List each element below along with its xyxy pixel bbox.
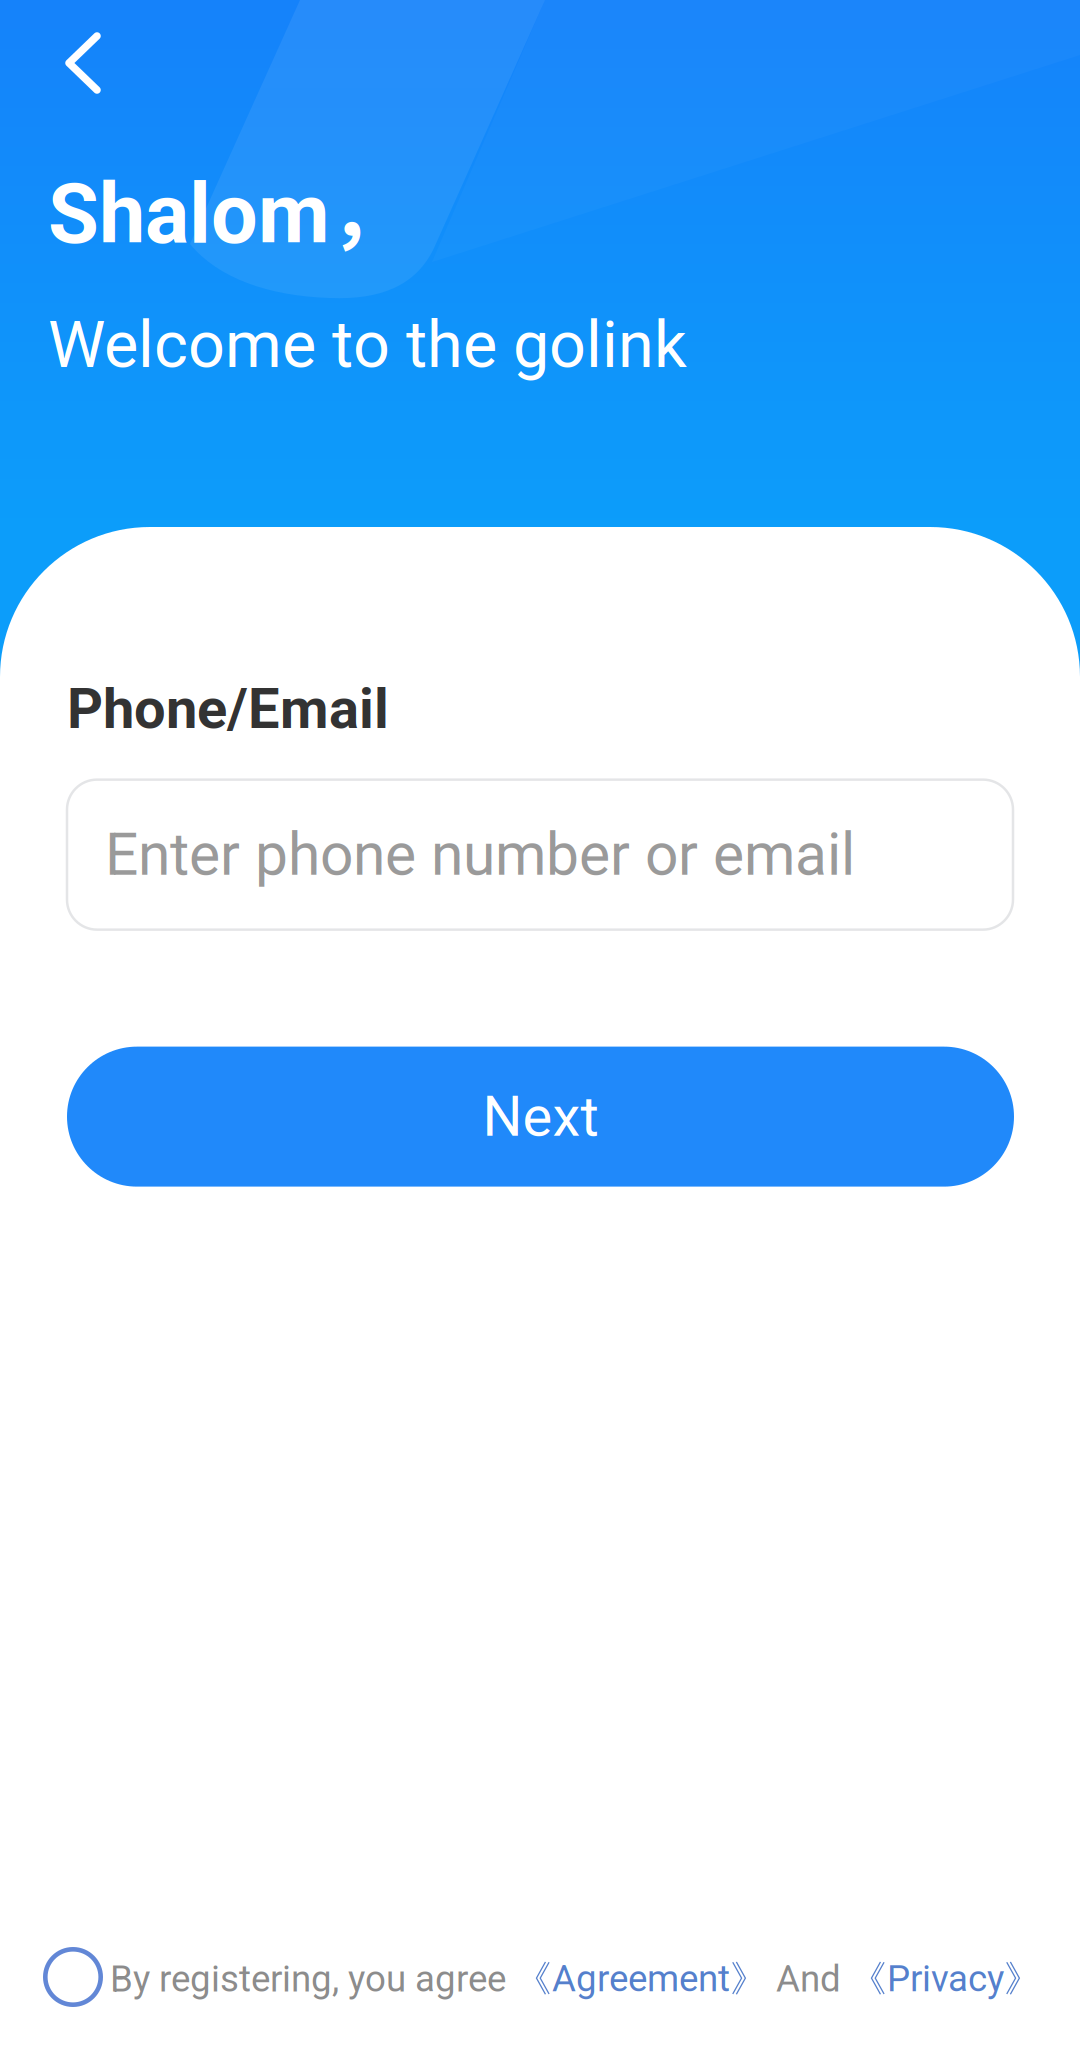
button[interactable]: Back: [50, 22, 146, 104]
staticText: And: [767, 1957, 850, 2000]
staticText: 《Privacy》: [850, 1956, 1041, 2002]
button[interactable]: 《Agreement》: [515, 1956, 767, 2002]
staticText: Enter phone number or email: [105, 820, 855, 889]
staticText: By registering, you agree: [110, 1957, 515, 2000]
button[interactable]: Next: [67, 1047, 1014, 1187]
staticText: Next: [482, 1084, 598, 1149]
button[interactable]: Agree to terms: [43, 1947, 103, 2007]
staticText: Phone/Email: [67, 676, 389, 742]
staticText: ，: [330, 151, 407, 263]
staticText: Shalom: [48, 166, 330, 263]
staticText: 《Agreement》: [515, 1956, 767, 2002]
staticText: Welcome to the golink: [48, 307, 687, 383]
button[interactable]: 《Privacy》: [850, 1956, 1041, 2002]
